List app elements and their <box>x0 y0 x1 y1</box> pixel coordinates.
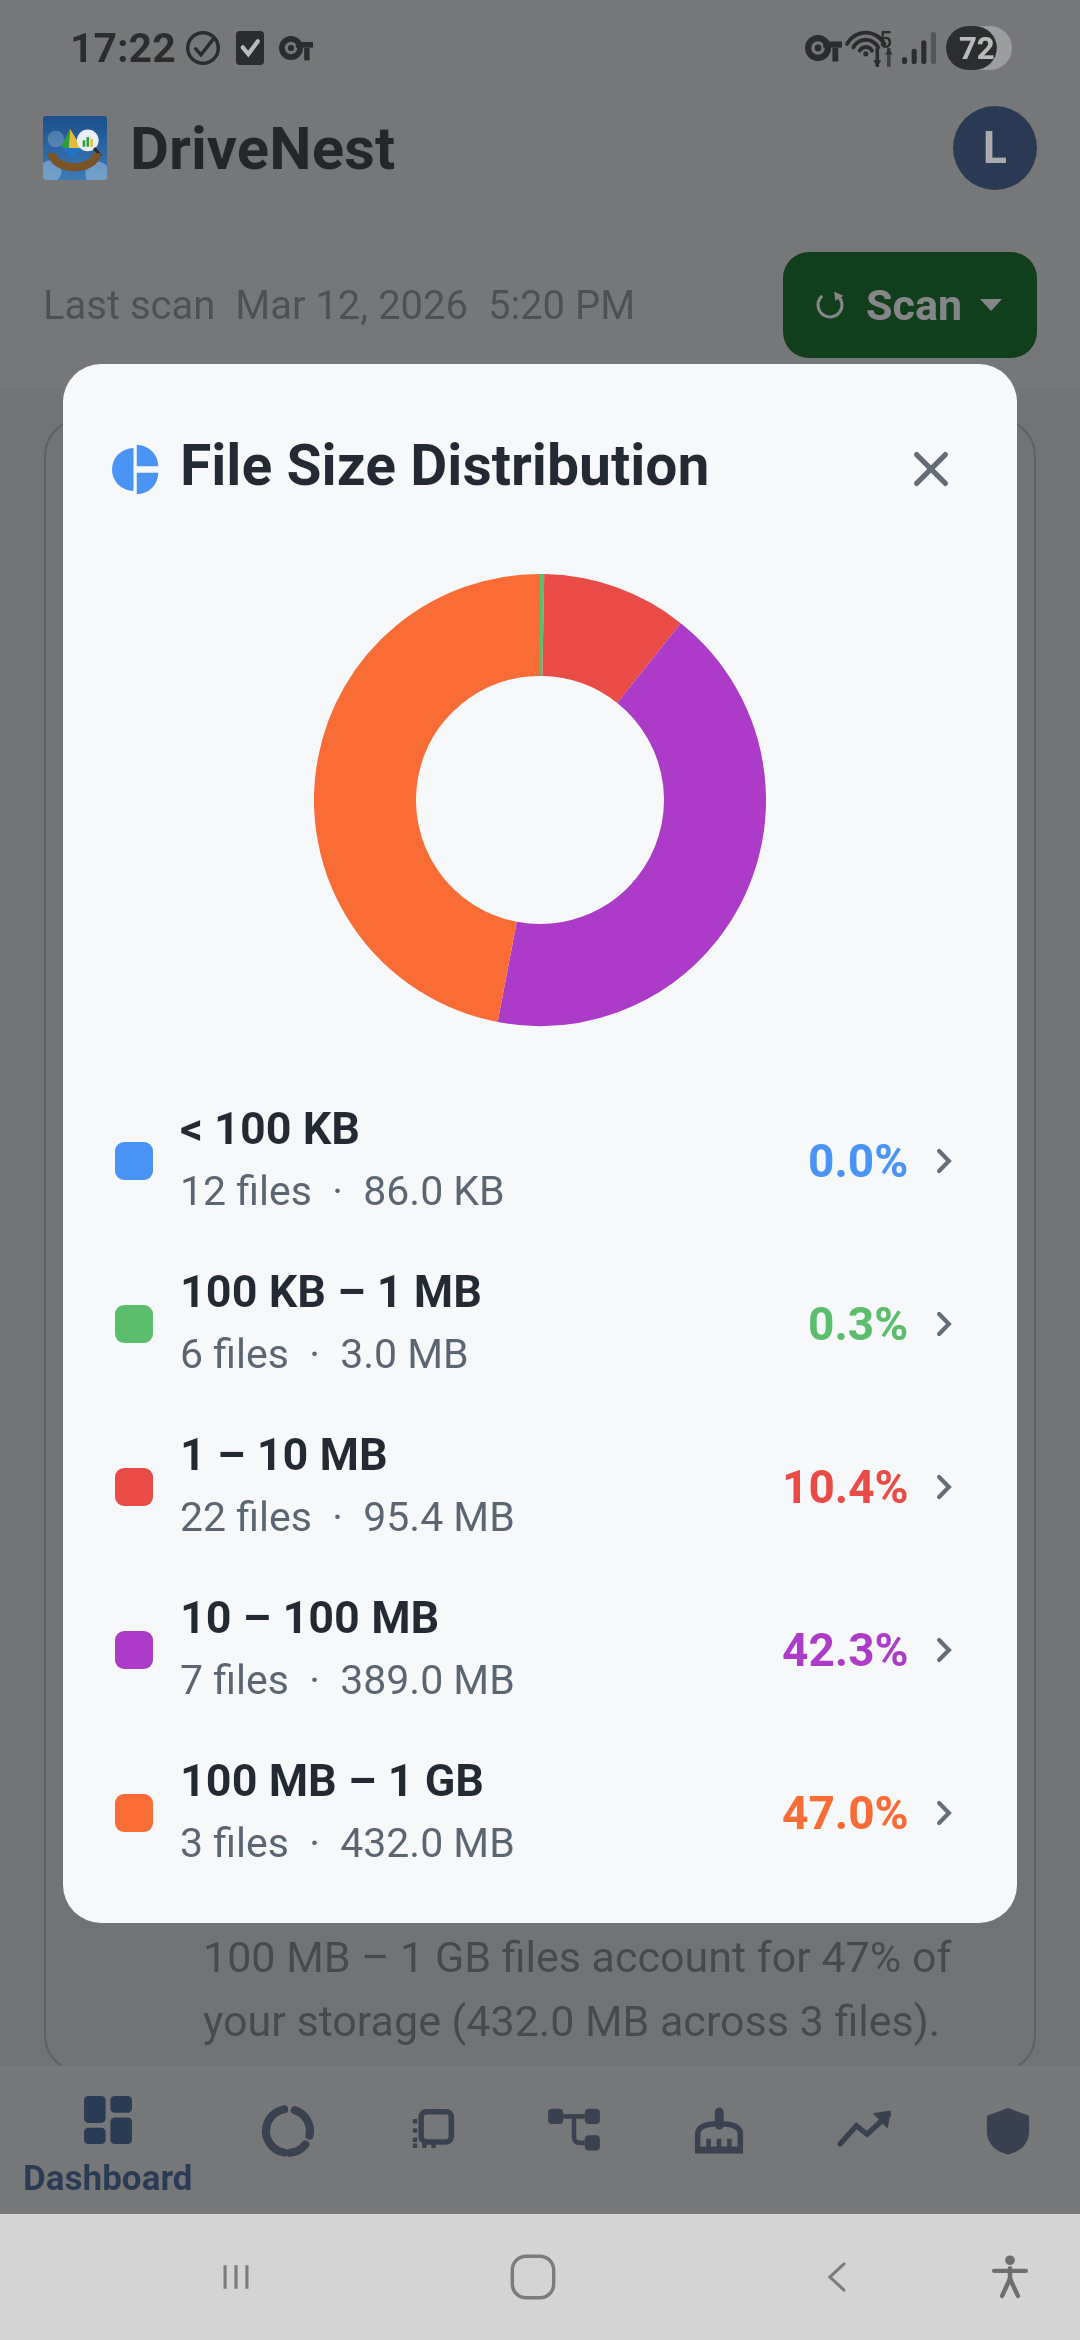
button[interactable]: Devices <box>370 2092 490 2170</box>
staticText: Scan <box>866 280 963 330</box>
staticText: 10 – 100 MB <box>180 1591 440 1644</box>
staticText: 100 KB – 1 MB <box>180 1265 482 1318</box>
button[interactable]: Scan <box>228 2092 348 2170</box>
button[interactable]: Trends <box>805 2092 925 2170</box>
button[interactable]: 1 – 10 MB <box>63 1405 1017 1568</box>
button[interactable]: Account <box>953 106 1037 190</box>
staticText: Last scan Mar 12, 2026 5:20 PM <box>43 282 636 329</box>
staticText: 7 files · 389.0 MB <box>180 1656 515 1704</box>
staticText: 100 MB – 1 GB files account for 47% of y… <box>203 1932 963 2062</box>
staticText: 72 <box>959 30 995 66</box>
staticText: 22 files · 95.4 MB <box>180 1493 515 1541</box>
staticText: 17:22 <box>70 24 176 72</box>
staticText: 5 <box>879 27 893 54</box>
button[interactable]: Close <box>886 424 976 514</box>
button[interactable]: Back <box>777 2214 897 2340</box>
staticText: L <box>983 122 1007 174</box>
staticText: < 100 KB <box>180 1102 361 1155</box>
button[interactable]: Structure <box>514 2092 634 2170</box>
button[interactable]: 100 MB – 1 GB <box>63 1731 1017 1894</box>
staticText: 1 – 10 MB <box>180 1428 388 1481</box>
staticText: 12 files · 86.0 KB <box>180 1167 505 1215</box>
staticText: 42.3% <box>782 1623 909 1677</box>
button[interactable]: Scan <box>783 252 1037 358</box>
staticText: DriveNest <box>130 113 396 183</box>
button[interactable]: Home <box>473 2214 593 2340</box>
button[interactable]: Recents <box>176 2214 296 2340</box>
staticText: 100 MB – 1 GB <box>180 1754 485 1807</box>
staticText: 6 files · 3.0 MB <box>180 1330 469 1378</box>
staticText: Dashboard <box>23 2158 193 2199</box>
staticText: 0.3% <box>808 1297 909 1351</box>
staticText: 10.4% <box>782 1460 909 1514</box>
staticText: 0.0% <box>808 1134 909 1188</box>
button[interactable]: Accessibility <box>950 2214 1070 2340</box>
button[interactable]: Clean <box>659 2092 779 2170</box>
staticText: 3 files · 432.0 MB <box>180 1819 515 1867</box>
button[interactable]: DriveNest app icon <box>43 116 107 180</box>
button[interactable]: Security <box>948 2092 1068 2170</box>
button[interactable]: 10 – 100 MB <box>63 1568 1017 1731</box>
staticText: 47.0% <box>782 1786 909 1840</box>
button[interactable]: Dashboard <box>0 2066 215 2214</box>
button[interactable]: 100 KB – 1 MB <box>63 1242 1017 1405</box>
staticText: File Size Distribution <box>180 432 710 499</box>
button[interactable]: < 100 KB <box>63 1079 1017 1242</box>
